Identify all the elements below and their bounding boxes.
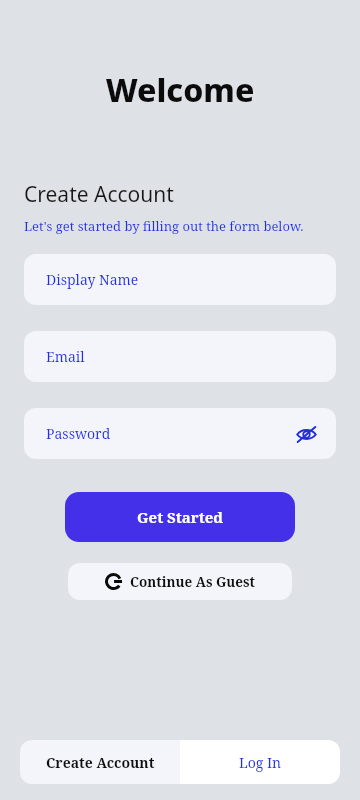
button[interactable]: Password — [24, 408, 336, 459]
staticText: Create Account — [24, 180, 174, 209]
button[interactable]: Create Account — [20, 740, 180, 784]
staticText: Password — [46, 424, 111, 443]
staticText: Continue As Guest — [130, 573, 256, 591]
button[interactable]: Continue As Guest — [68, 563, 292, 600]
button[interactable]: Email — [24, 331, 336, 382]
staticText: Log In — [239, 753, 282, 772]
button[interactable]: Display Name — [24, 254, 336, 305]
staticText: Display Name — [46, 270, 139, 289]
button[interactable]: Log In — [180, 740, 340, 784]
staticText: Create Account — [46, 753, 155, 772]
staticText: Email — [46, 347, 85, 366]
button[interactable]: Show password — [292, 420, 320, 448]
staticText: Welcome — [0, 68, 360, 112]
button[interactable]: Get Started — [65, 492, 295, 542]
staticText: Get Started — [137, 507, 224, 527]
staticText: Let's get started by filling out the for… — [24, 217, 304, 235]
